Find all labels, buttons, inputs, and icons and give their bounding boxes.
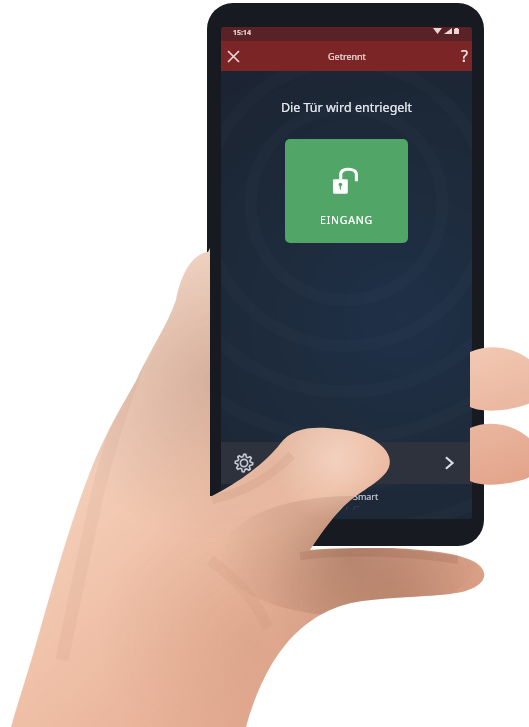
staticText: EINGANG [320, 213, 373, 227]
staticText: Die Tür wird entriegelt [221, 99, 472, 116]
button[interactable]: Help [456, 41, 472, 71]
staticText: LG [345, 502, 362, 510]
staticText: ? [461, 45, 468, 67]
button[interactable]: EINGANG [285, 139, 408, 243]
staticText: Home Smart [325, 490, 379, 502]
button[interactable]: Tür entriegelt [221, 442, 472, 484]
staticText: Getrennt [328, 50, 366, 62]
button[interactable]: Close [221, 41, 245, 71]
staticText: Tür entriegelt [267, 456, 331, 470]
staticText: 15:14 [233, 28, 251, 38]
